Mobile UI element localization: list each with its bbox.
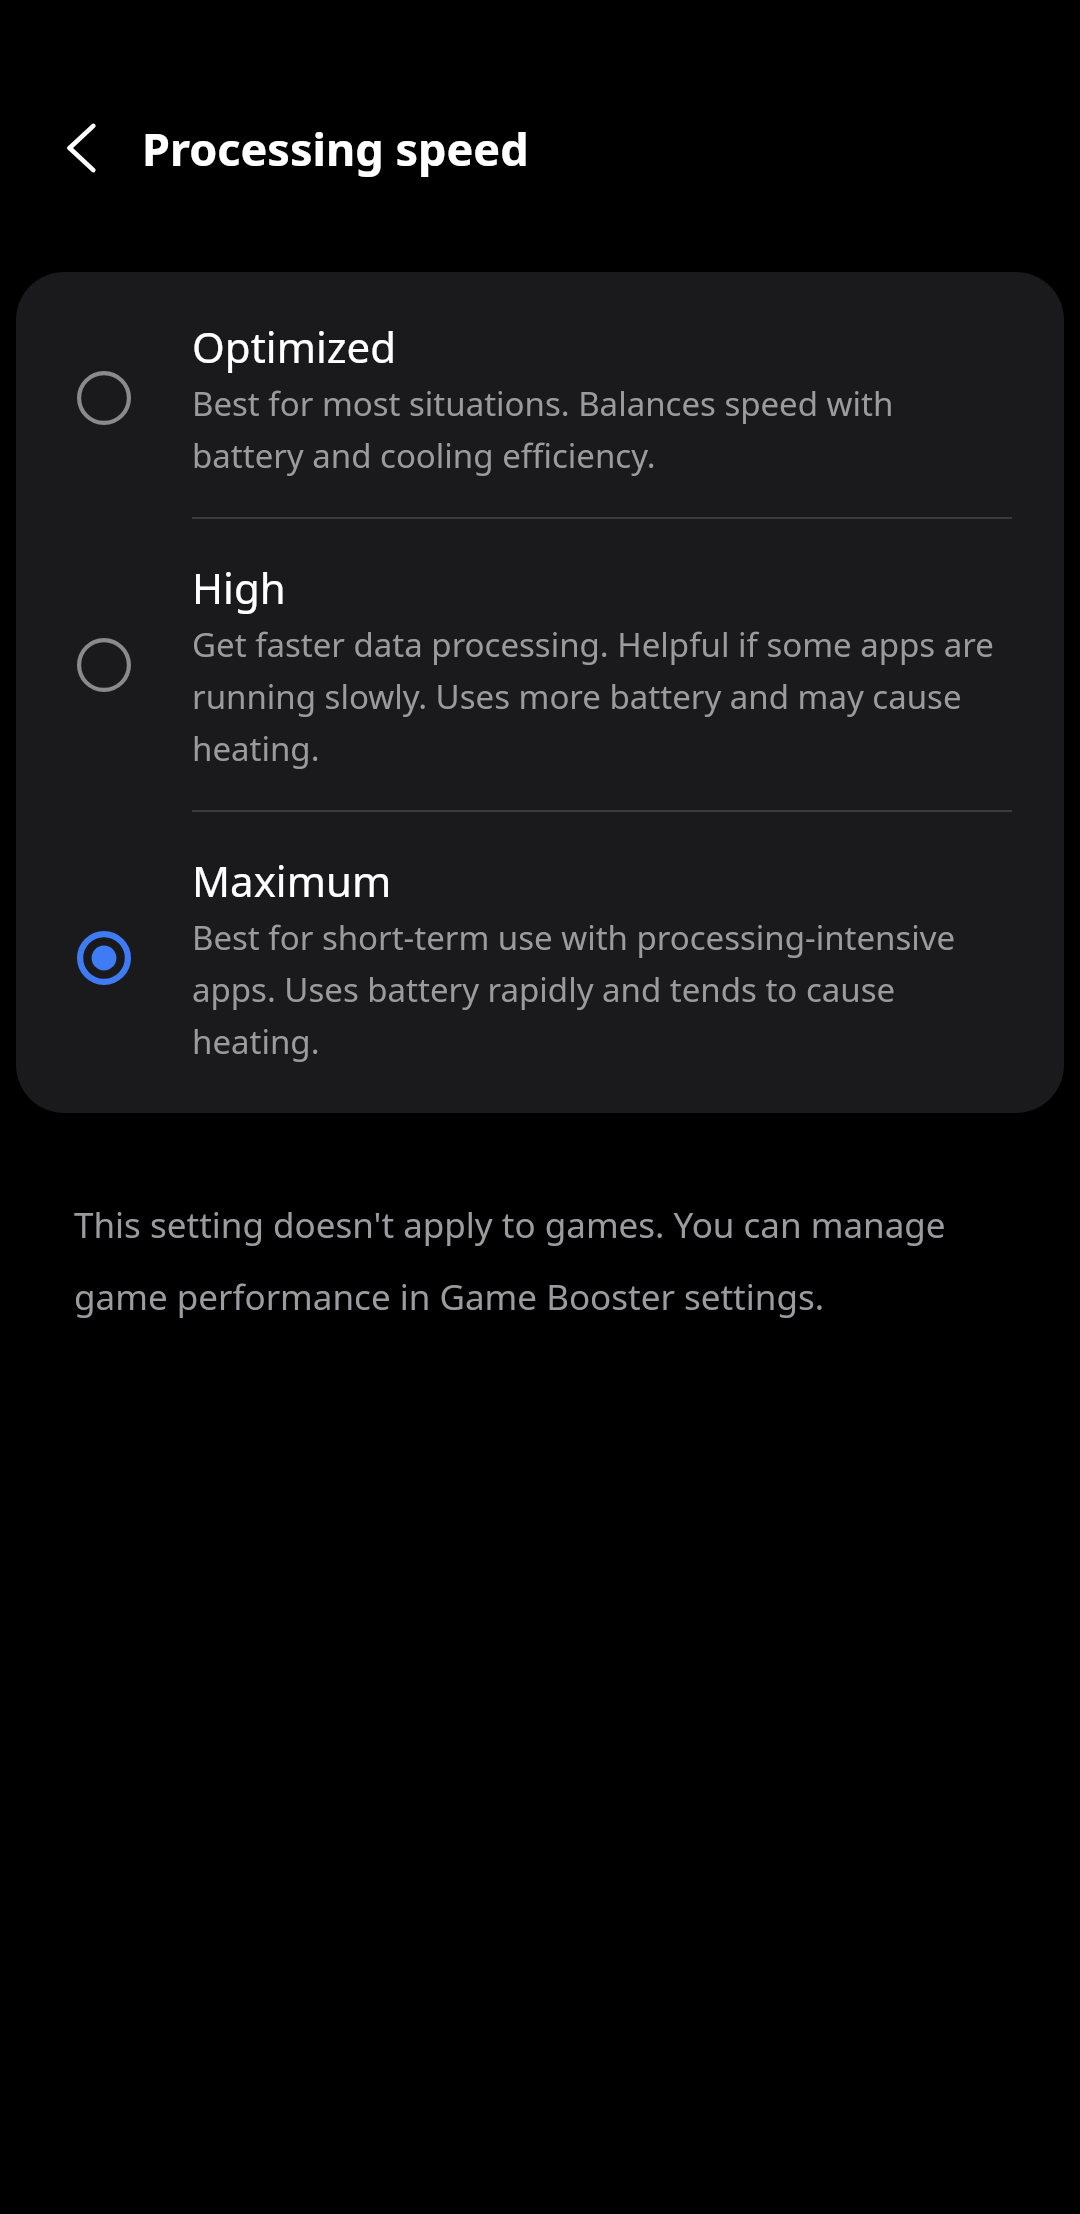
staticText: Best for most situations. Balances speed… (192, 381, 1006, 477)
staticText: Get faster data processing. Helpful if s… (192, 622, 1006, 770)
staticText: This setting doesn't apply to games. You… (74, 1201, 976, 1320)
staticText: Maximum (192, 852, 392, 909)
staticText: Best for short-term use with processing-… (192, 915, 1006, 1063)
button[interactable]: Maximum (16, 812, 1064, 1113)
button[interactable]: Back (44, 110, 120, 186)
staticText: Processing speed (142, 118, 529, 179)
staticText: High (192, 559, 286, 616)
button[interactable]: High (16, 519, 1064, 810)
button[interactable]: Optimized (16, 272, 1064, 517)
staticText: Optimized (192, 318, 396, 375)
